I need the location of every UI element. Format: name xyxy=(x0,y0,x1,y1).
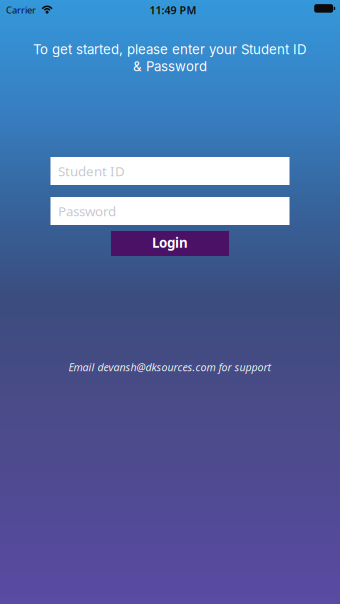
staticText: 11:49 PM xyxy=(149,3,196,17)
staticText: Password xyxy=(58,202,116,220)
button[interactable]: Student ID xyxy=(50,157,289,185)
staticText: Carrier xyxy=(6,4,36,16)
staticText: Login xyxy=(152,234,188,251)
button[interactable]: Login xyxy=(111,231,229,256)
staticText: To get started, please enter your Studen… xyxy=(33,41,307,57)
staticText: & Password xyxy=(133,58,207,74)
staticText: Student ID xyxy=(58,162,125,180)
staticText: Email devansh@dksources.com for support xyxy=(68,360,271,374)
button[interactable]: Password xyxy=(50,197,289,225)
